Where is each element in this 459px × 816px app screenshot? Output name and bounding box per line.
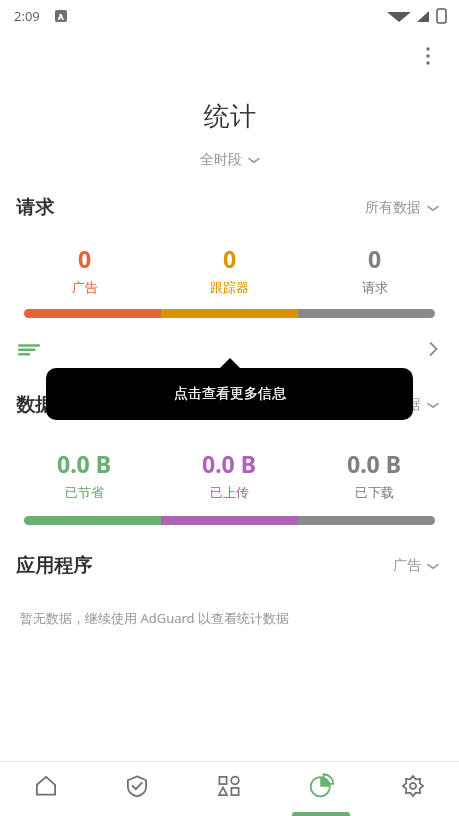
staticText: 所有数据 xyxy=(365,199,421,217)
staticText: A xyxy=(58,11,64,22)
staticText: 0.0 B xyxy=(347,448,402,479)
staticText: 点击查看更多信息 xyxy=(174,385,286,403)
staticText: 0 xyxy=(368,243,382,274)
staticText: 广告 xyxy=(72,279,98,295)
staticText: 数据使用率 xyxy=(16,393,111,417)
staticText: 2:09 xyxy=(14,7,40,25)
button[interactable]: Protection xyxy=(91,762,183,816)
staticText: 统计 xyxy=(204,100,256,133)
staticText: 0.0 B xyxy=(202,448,257,479)
button[interactable]: 全时段 xyxy=(194,149,266,171)
button[interactable]: 广告 xyxy=(389,553,443,579)
staticText: 0.0 B xyxy=(57,448,112,479)
staticText: 已节省 xyxy=(65,484,104,500)
staticText: 所有数据 xyxy=(365,396,421,414)
staticText: 已上传 xyxy=(210,484,249,500)
button[interactable]: Apps xyxy=(183,762,275,816)
staticText: 0 xyxy=(223,243,237,274)
button[interactable]: Home xyxy=(0,762,91,816)
button[interactable] xyxy=(0,318,459,380)
button[interactable]: Statistics xyxy=(275,762,367,816)
button[interactable]: 所有数据 xyxy=(361,392,443,418)
staticText: 全时段 xyxy=(200,151,242,169)
staticText: 跟踪器 xyxy=(210,279,249,295)
staticText: 应用程序 xyxy=(16,554,92,578)
staticText: 请求 xyxy=(16,196,54,220)
staticText: 请求 xyxy=(362,279,388,295)
button[interactable]: More options xyxy=(411,39,445,73)
button[interactable]: 所有数据 xyxy=(361,195,443,221)
staticText: 暂无数据，继续使用 AdGuard 以查看统计数据 xyxy=(20,609,289,627)
staticText: 已下载 xyxy=(355,484,394,500)
button[interactable]: Settings xyxy=(367,762,459,816)
staticText: 广告 xyxy=(393,557,421,575)
staticText: 0 xyxy=(78,243,92,274)
button[interactable]: 点击查看更多信息 xyxy=(46,368,413,420)
